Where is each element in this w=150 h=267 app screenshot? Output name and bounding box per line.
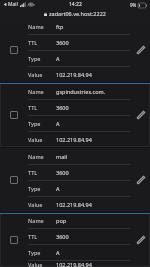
staticText: Name bbox=[28, 23, 44, 30]
staticText: 3600 bbox=[56, 104, 69, 111]
staticText: 102.219.84.94 bbox=[56, 136, 92, 143]
button[interactable]: Edit record gspindustries.com. bbox=[130, 83, 150, 147]
staticText: Value bbox=[28, 136, 43, 143]
staticText: 102.219.84.94 bbox=[56, 261, 92, 267]
staticText: pop bbox=[56, 217, 67, 224]
staticText: TTL bbox=[28, 39, 38, 46]
button[interactable]: Select record gspindustries.com. bbox=[0, 83, 28, 147]
button[interactable]: Edit record mail bbox=[130, 148, 150, 212]
staticText: zadart06.ve.host:2222 bbox=[49, 10, 106, 17]
staticText: A bbox=[56, 185, 60, 192]
button[interactable]: Select record pop bbox=[0, 213, 28, 267]
staticText: TTL bbox=[28, 233, 38, 240]
staticText: Type bbox=[28, 120, 41, 127]
button[interactable]: zadart06.ve.host:2222 bbox=[0, 9, 150, 18]
staticText: Value bbox=[28, 71, 43, 78]
button[interactable]: Edit record ftp bbox=[130, 18, 150, 82]
staticText: 102.219.84.94 bbox=[56, 71, 92, 78]
staticText: Name bbox=[28, 217, 44, 224]
button[interactable] bbox=[0, 213, 150, 267]
staticText: Value bbox=[28, 261, 43, 267]
button[interactable]: Select record mail bbox=[0, 148, 28, 212]
staticText: A bbox=[56, 55, 60, 62]
staticText: Value bbox=[28, 201, 43, 208]
staticText: 9% bbox=[130, 2, 137, 8]
staticText: TTL bbox=[28, 104, 38, 111]
button[interactable]: Select record ftp bbox=[0, 18, 28, 82]
staticText: Mail bbox=[8, 1, 18, 8]
staticText: Name bbox=[28, 153, 44, 160]
staticText: TTL bbox=[28, 169, 38, 176]
staticText: mail bbox=[56, 153, 68, 160]
staticText: 3600 bbox=[56, 233, 69, 240]
staticText: 14:22 bbox=[69, 1, 82, 8]
staticText: A bbox=[56, 120, 60, 127]
button[interactable]: Edit record pop bbox=[130, 213, 150, 267]
staticText: Name bbox=[28, 88, 44, 95]
staticText: Type bbox=[28, 55, 41, 62]
button[interactable] bbox=[0, 148, 150, 212]
staticText: A bbox=[56, 249, 60, 256]
staticText: Type bbox=[28, 185, 41, 192]
button[interactable] bbox=[0, 83, 150, 147]
button[interactable] bbox=[0, 18, 150, 82]
staticText: 3600 bbox=[56, 169, 69, 176]
staticText: Type bbox=[28, 249, 41, 256]
staticText: 102.219.84.94 bbox=[56, 201, 92, 208]
staticText: 3600 bbox=[56, 39, 69, 46]
staticText: gspindustries.com. bbox=[56, 88, 106, 95]
staticText: ftp bbox=[56, 23, 64, 30]
